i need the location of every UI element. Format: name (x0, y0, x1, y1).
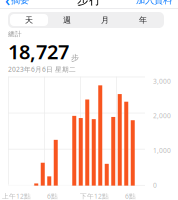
staticText: 1,000 (153, 146, 171, 155)
button[interactable]: 週 (48, 14, 86, 26)
button[interactable]: 天 (10, 14, 48, 26)
staticText: 天 (25, 15, 33, 25)
staticText: 0 (153, 181, 157, 190)
button[interactable]: ‹ (0, 0, 34, 14)
staticText: 加入資料 (136, 0, 172, 6)
staticText: 摘要 (11, 0, 29, 6)
staticText: 步行 (77, 0, 101, 7)
staticText: 3,000 (153, 77, 171, 85)
staticText: 年 (139, 15, 147, 25)
staticText: 上午12點 (2, 192, 31, 200)
staticText: ‹ (5, 0, 10, 11)
staticText: 步 (71, 53, 79, 63)
staticText: 18,727 (8, 38, 69, 65)
staticText: 6點 (47, 192, 58, 200)
button[interactable]: 年 (124, 14, 162, 26)
button[interactable]: 月 (86, 14, 124, 26)
staticText: 週 (63, 15, 71, 25)
staticText: 月 (101, 15, 109, 25)
staticText: 2,000 (153, 111, 171, 120)
staticText: 6點 (125, 192, 136, 200)
staticText: 2023年6月6日 星期二 (8, 65, 76, 74)
button[interactable]: 加入資料 (130, 0, 178, 9)
staticText: 下午12點 (80, 192, 109, 200)
staticText: 總計 (8, 30, 22, 38)
